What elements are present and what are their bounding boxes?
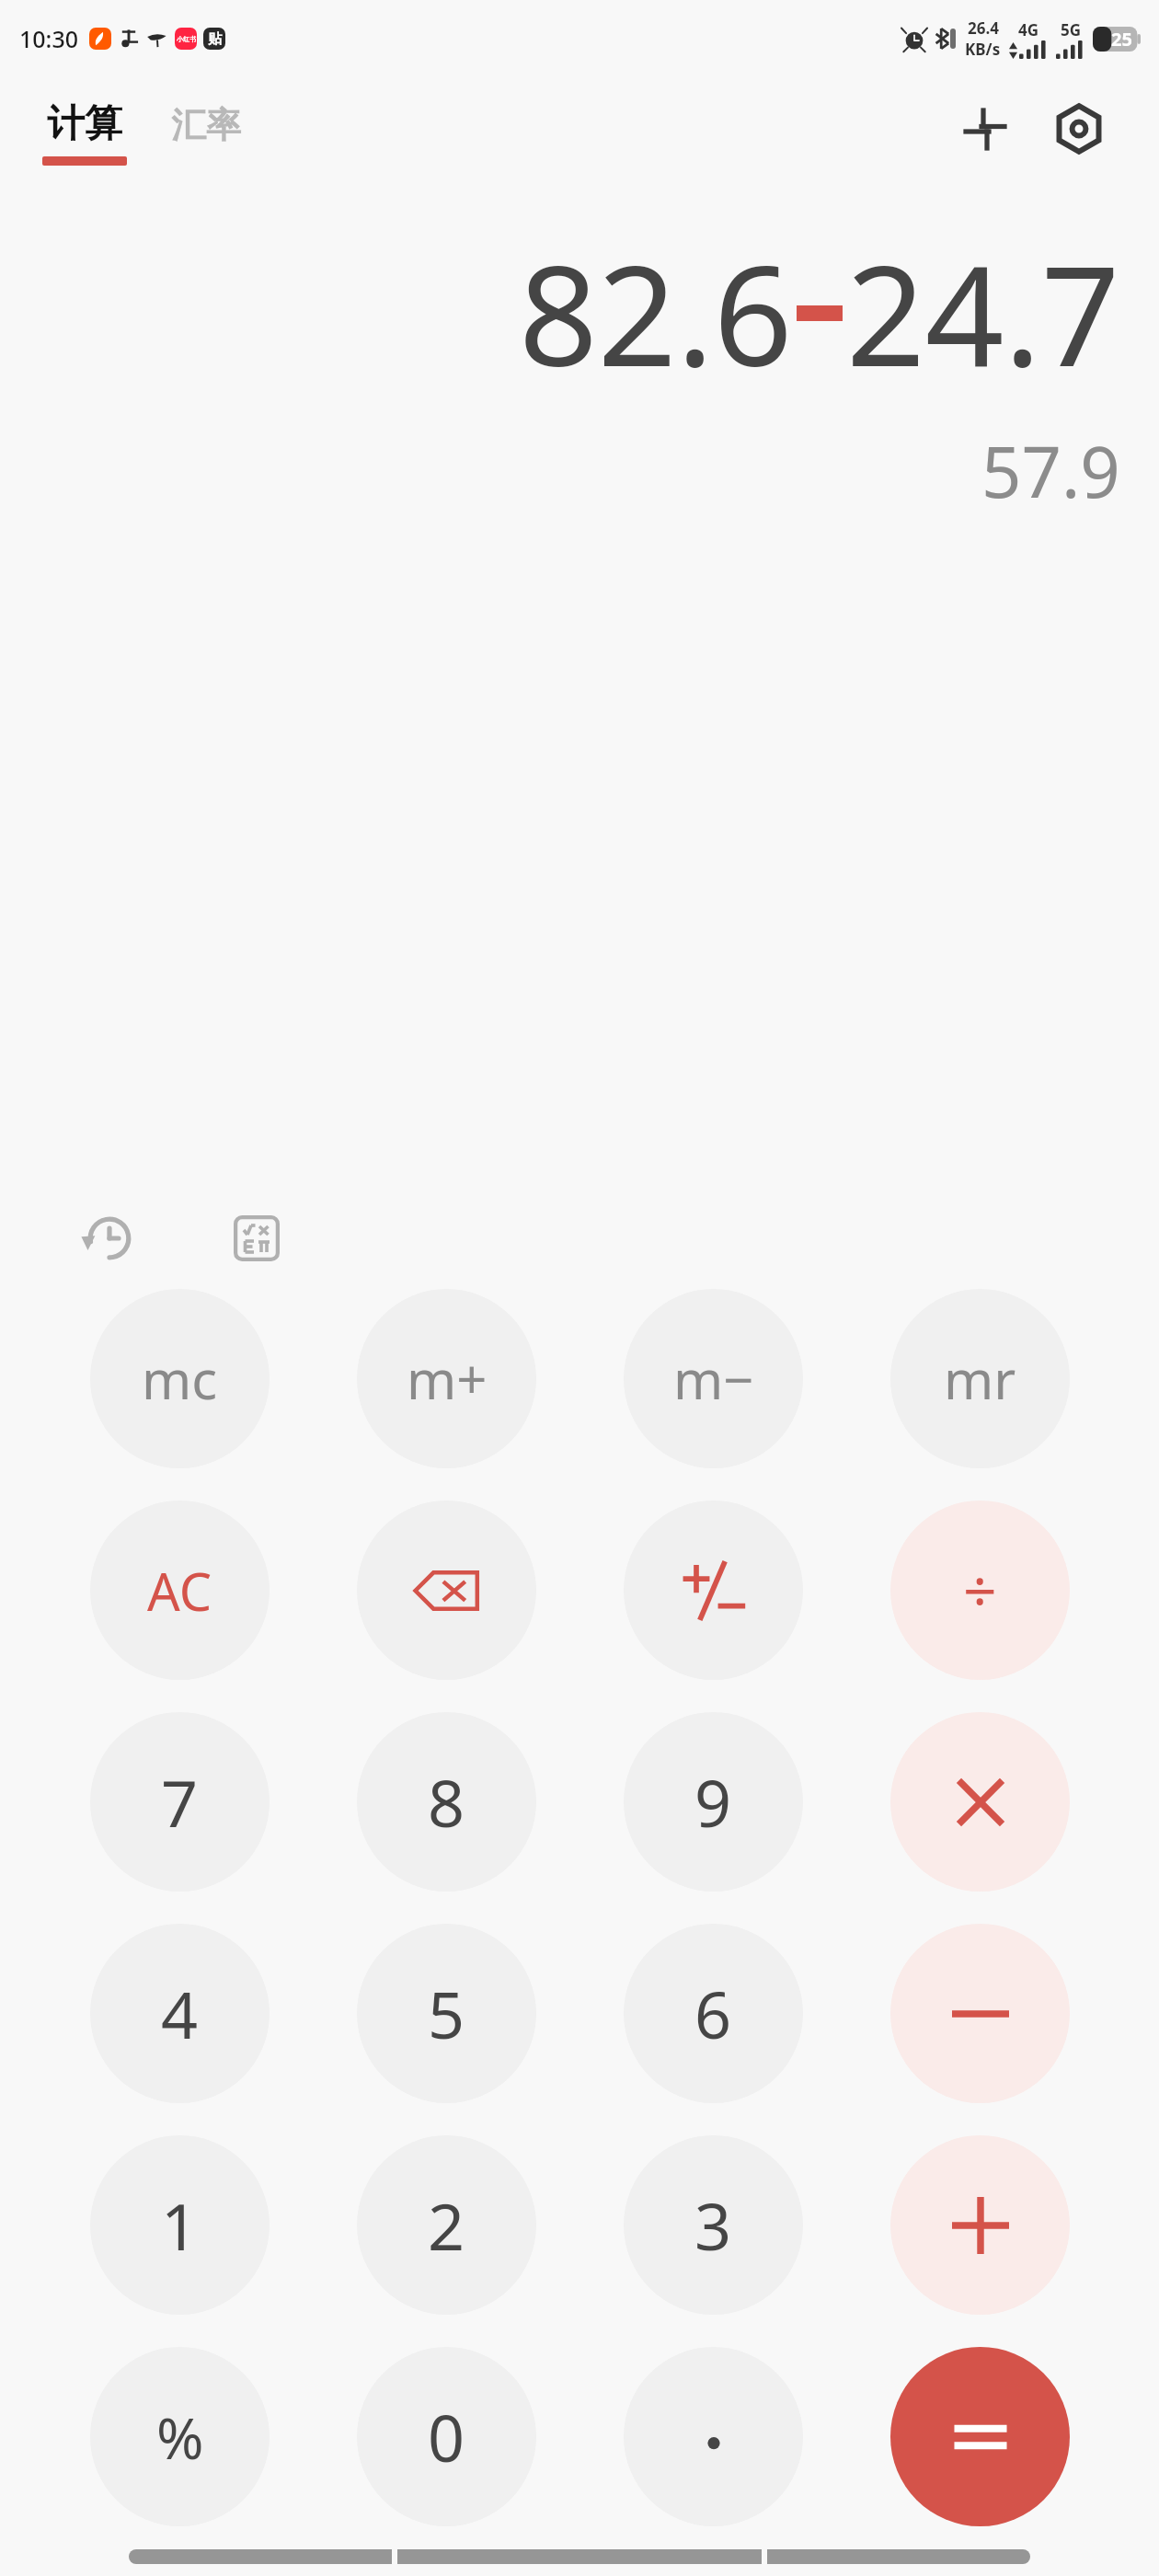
button[interactable]: Home bbox=[397, 2549, 762, 2564]
staticText: 4 bbox=[161, 1970, 199, 2057]
button[interactable]: Equals bbox=[890, 2347, 1070, 2526]
staticText: 25 bbox=[1111, 27, 1132, 52]
button[interactable]: Add bbox=[890, 2135, 1070, 2315]
staticText: 1 bbox=[161, 2181, 199, 2269]
staticText: mr bbox=[944, 1342, 1016, 1415]
button[interactable]: 计算 bbox=[42, 100, 127, 166]
staticText: AC bbox=[147, 1556, 212, 1626]
button[interactable]: History bbox=[72, 1201, 147, 1276]
button[interactable]: 0 bbox=[357, 2347, 536, 2526]
button[interactable]: ÷ bbox=[890, 1501, 1070, 1680]
button[interactable]: 8 bbox=[357, 1712, 536, 1892]
button[interactable]: Scientific calculator bbox=[219, 1201, 294, 1276]
button[interactable]: Decimal point bbox=[624, 2347, 803, 2526]
staticText: 8 bbox=[428, 1758, 465, 1846]
staticText: 24.7 bbox=[846, 219, 1120, 407]
staticText: 汇率 bbox=[171, 103, 241, 147]
staticText: m+ bbox=[407, 1342, 488, 1415]
staticText: m− bbox=[673, 1342, 754, 1415]
staticText: 82.6 bbox=[519, 219, 793, 407]
button[interactable]: Recent apps bbox=[767, 2549, 1030, 2564]
button[interactable]: Toggle sign bbox=[624, 1501, 803, 1680]
button[interactable]: 7 bbox=[90, 1712, 270, 1892]
staticText: 计算 bbox=[47, 100, 122, 148]
button[interactable]: Resize window bbox=[947, 91, 1023, 167]
button[interactable]: mc bbox=[90, 1289, 270, 1468]
staticText: ÷ bbox=[963, 1550, 997, 1630]
staticText: 10:30 bbox=[19, 23, 79, 54]
button[interactable]: 9 bbox=[624, 1712, 803, 1892]
staticText: 贴 bbox=[208, 30, 222, 48]
staticText: KB/s bbox=[965, 39, 1001, 60]
staticText: 5 bbox=[428, 1970, 465, 2057]
button[interactable]: Settings bbox=[1041, 91, 1117, 167]
button[interactable]: m+ bbox=[357, 1289, 536, 1468]
staticText: 26.4 bbox=[968, 17, 999, 39]
button[interactable]: 3 bbox=[624, 2135, 803, 2315]
staticText: mc bbox=[142, 1342, 218, 1415]
button[interactable]: Back bbox=[129, 2549, 392, 2564]
button[interactable]: Multiply bbox=[890, 1712, 1070, 1892]
button[interactable]: Delete bbox=[357, 1501, 536, 1680]
button[interactable]: mr bbox=[890, 1289, 1070, 1468]
staticText: 小红书 bbox=[177, 35, 196, 43]
staticText: 3 bbox=[694, 2181, 732, 2269]
button[interactable]: AC bbox=[90, 1501, 270, 1680]
button[interactable]: 2 bbox=[357, 2135, 536, 2315]
button[interactable]: 1 bbox=[90, 2135, 270, 2315]
staticText: 7 bbox=[161, 1758, 199, 1846]
staticText: 9 bbox=[694, 1758, 732, 1846]
staticText: % bbox=[156, 2398, 204, 2476]
staticText: 0 bbox=[428, 2393, 465, 2480]
staticText: 57.9 bbox=[981, 423, 1120, 519]
staticText: 5G bbox=[1061, 19, 1082, 40]
staticText: 2 bbox=[428, 2181, 465, 2269]
staticText: 6 bbox=[694, 1970, 732, 2057]
button[interactable]: m− bbox=[624, 1289, 803, 1468]
button[interactable]: % bbox=[90, 2347, 270, 2526]
staticText: 4G bbox=[1018, 19, 1039, 40]
button[interactable]: 6 bbox=[624, 1924, 803, 2103]
button[interactable]: Subtract bbox=[890, 1924, 1070, 2103]
button[interactable]: 5 bbox=[357, 1924, 536, 2103]
button[interactable]: 4 bbox=[90, 1924, 270, 2103]
button[interactable]: 汇率 bbox=[171, 103, 241, 164]
